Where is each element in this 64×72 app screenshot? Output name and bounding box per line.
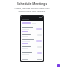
staticText: Create, manage and join video calls dire… bbox=[3, 7, 61, 13]
button[interactable]: Join bbox=[21, 38, 43, 44]
button[interactable]: Join bbox=[21, 50, 43, 56]
button[interactable]: Join bbox=[37, 52, 42, 54]
button[interactable]: Join bbox=[36, 28, 42, 30]
staticText: Schedule Meetings bbox=[3, 2, 61, 6]
button[interactable]: Join bbox=[21, 26, 43, 32]
button[interactable]: New meeting bbox=[57, 64, 60, 67]
button[interactable] bbox=[22, 22, 42, 24]
button[interactable]: Join bbox=[21, 44, 43, 50]
button[interactable]: Join bbox=[36, 40, 42, 42]
button[interactable]: Join bbox=[21, 32, 43, 38]
